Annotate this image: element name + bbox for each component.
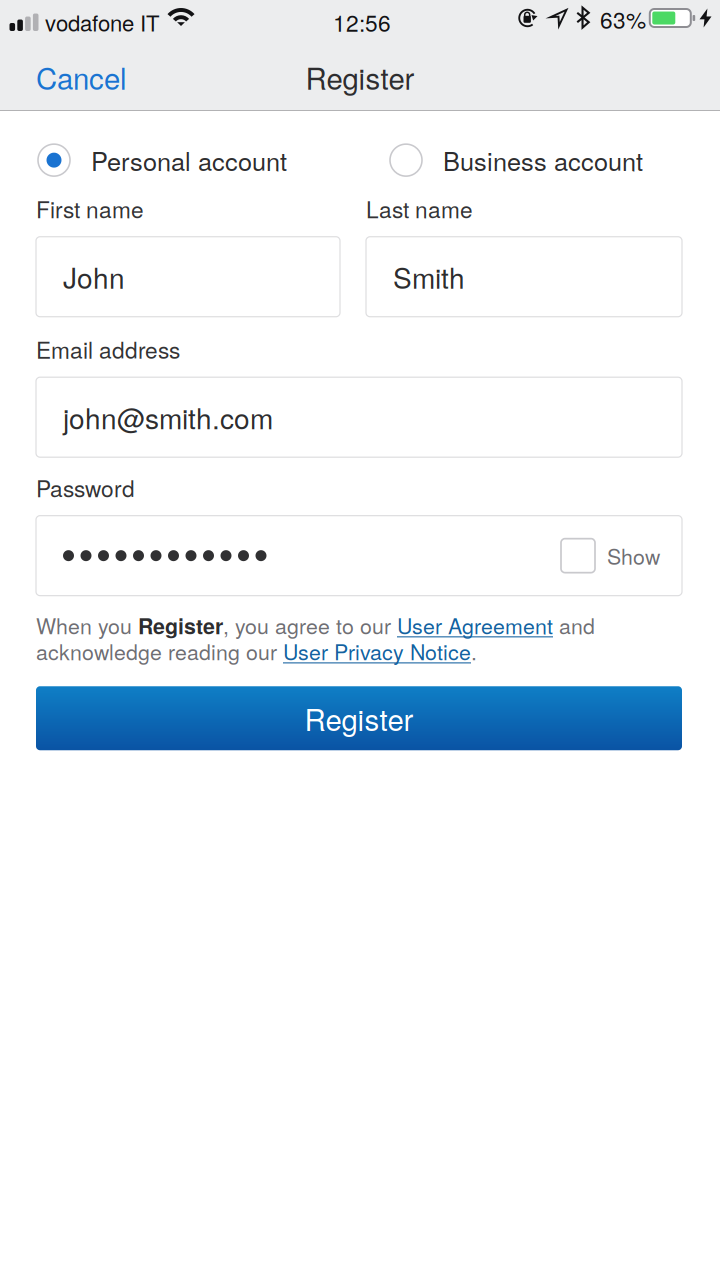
button[interactable]: Show [561, 527, 660, 585]
staticText: 12:56 [333, 6, 391, 38]
button[interactable]: John [36, 237, 340, 317]
staticText: Password [36, 471, 135, 504]
staticText: Cancel [36, 56, 127, 98]
staticText: Last name [366, 192, 473, 225]
staticText: john@smith.com [63, 397, 273, 437]
staticText: Show [607, 540, 660, 571]
staticText: Personal account [91, 142, 287, 178]
staticText: First name [36, 192, 144, 225]
button[interactable]: Business account [390, 142, 643, 178]
button[interactable]: Register [36, 686, 682, 750]
button[interactable]: Smith [366, 237, 682, 317]
staticText: acknowledge reading our User Privacy Not… [36, 636, 477, 666]
button[interactable]: Personal account [38, 142, 287, 178]
staticText: When you Register, you agree to our User… [36, 610, 595, 641]
staticText: 63% [600, 3, 646, 35]
button[interactable]: Cancel [0, 44, 145, 110]
staticText: Register [304, 697, 413, 739]
staticText: Register [305, 56, 414, 98]
button[interactable]: john@smith.com [36, 377, 682, 457]
staticText: Business account [443, 142, 643, 178]
staticText: Email address [36, 333, 180, 365]
staticText: Smith [393, 257, 465, 297]
staticText: vodafone IT [45, 6, 160, 38]
staticText: John [63, 257, 125, 297]
